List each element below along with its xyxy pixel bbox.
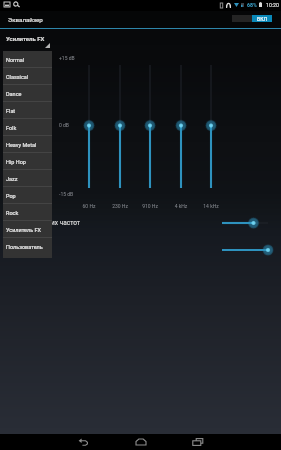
button[interactable]: 910 Hz bbox=[139, 59, 161, 194]
staticText: Hip Hop bbox=[6, 159, 26, 165]
staticText: Эквалайзер bbox=[8, 16, 43, 23]
button[interactable]: 14 kHz bbox=[200, 59, 222, 194]
staticText: Rock bbox=[6, 210, 19, 216]
button[interactable]: Главный экран bbox=[131, 434, 151, 450]
button[interactable]: Включить эквалайзер bbox=[232, 15, 272, 22]
staticText: Dance bbox=[6, 91, 22, 97]
button[interactable]: Пользователь bbox=[3, 238, 52, 255]
button[interactable]: Hip Hop bbox=[3, 153, 52, 170]
staticText: Flat bbox=[6, 108, 16, 114]
button[interactable]: Усилитель FX bbox=[3, 221, 52, 238]
button[interactable]: Folk bbox=[3, 119, 52, 136]
staticText: Heavy Metal bbox=[6, 142, 37, 148]
staticText: 14 kHz bbox=[195, 203, 227, 209]
staticText: Pop bbox=[6, 193, 16, 199]
button[interactable]: Усиление низких частот bbox=[215, 216, 275, 230]
button[interactable]: 60 Hz bbox=[78, 59, 100, 194]
staticText: -15 dB bbox=[59, 191, 74, 197]
staticText: Усилитель FX bbox=[6, 227, 42, 233]
button[interactable]: Jazz bbox=[3, 170, 52, 187]
staticText: 4 kHz bbox=[165, 203, 197, 209]
staticText: +15 dB bbox=[59, 55, 75, 61]
staticText: Виртуализатор bbox=[6, 246, 52, 254]
staticText: 68% bbox=[247, 2, 257, 8]
button[interactable]: Flat bbox=[3, 102, 52, 119]
staticText: Classical bbox=[6, 74, 29, 80]
button[interactable]: 4 kHz bbox=[170, 59, 192, 194]
staticText: Jazz bbox=[6, 176, 18, 182]
button[interactable]: Назад bbox=[74, 434, 94, 450]
staticText: 10:20 bbox=[266, 2, 279, 8]
button[interactable]: Rock bbox=[3, 204, 52, 221]
staticText: 60 Hz bbox=[73, 203, 105, 209]
staticText: 0 dB bbox=[59, 122, 69, 128]
button[interactable]: Недавние приложения bbox=[188, 434, 208, 450]
staticText: Усилитель FX bbox=[6, 35, 45, 42]
staticText: Пользователь bbox=[6, 244, 43, 250]
button[interactable]: Выбор пресета bbox=[0, 29, 52, 49]
staticText: Усиление низких частот bbox=[6, 219, 80, 227]
button[interactable]: Normal bbox=[3, 51, 52, 68]
staticText: Normal bbox=[6, 57, 25, 63]
button[interactable]: Classical bbox=[3, 68, 52, 85]
staticText: 910 Hz bbox=[134, 203, 166, 209]
button[interactable]: Dance bbox=[3, 85, 52, 102]
button[interactable]: Виртуализатор bbox=[215, 243, 275, 257]
staticText: 230 Hz bbox=[104, 203, 136, 209]
button[interactable]: Pop bbox=[3, 187, 52, 204]
button[interactable]: Heavy Metal bbox=[3, 136, 52, 153]
staticText: ВКЛ bbox=[257, 16, 267, 22]
staticText: Folk bbox=[6, 125, 17, 131]
button[interactable]: 230 Hz bbox=[109, 59, 131, 194]
